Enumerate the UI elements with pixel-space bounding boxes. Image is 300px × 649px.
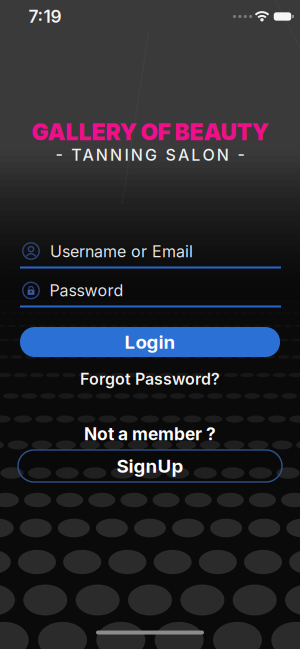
staticText: SignUp — [116, 455, 183, 477]
button[interactable]: Username or Email — [18, 236, 283, 270]
staticText: GALLERY OF BEAUTY — [31, 119, 268, 145]
staticText: Password — [49, 281, 123, 300]
button[interactable]: Login — [20, 327, 280, 357]
staticText: 7:19 — [28, 6, 61, 27]
button[interactable]: SignUp — [18, 450, 282, 482]
staticText: Login — [124, 331, 175, 353]
button[interactable]: Forgot Password? — [80, 370, 220, 388]
staticText: - TANNING SALON - — [56, 146, 244, 164]
button[interactable]: Password — [18, 276, 283, 310]
staticText: Username or Email — [50, 242, 193, 261]
staticText: Not a member ? — [84, 424, 216, 444]
staticText: Forgot Password? — [80, 370, 220, 388]
